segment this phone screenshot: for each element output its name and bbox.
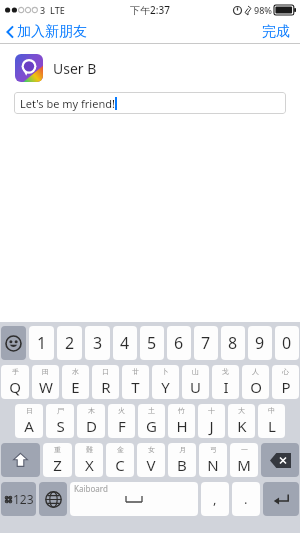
staticText: 2 — [65, 332, 75, 354]
button[interactable]: 山 — [182, 365, 209, 399]
button[interactable]: 尸 — [46, 404, 74, 438]
staticText: 金 — [117, 445, 124, 454]
button[interactable]: 木 — [77, 404, 105, 438]
staticText: 水 — [72, 367, 79, 376]
button[interactable]: 十 — [198, 404, 225, 438]
button[interactable]: 重 — [43, 443, 72, 477]
staticText: User B — [53, 59, 97, 78]
staticText: A — [24, 416, 34, 436]
staticText: E — [71, 377, 80, 397]
staticText: K — [237, 416, 247, 436]
staticText: 口 — [102, 367, 109, 376]
button[interactable]: 一 — [230, 443, 258, 477]
staticText: 戈 — [222, 367, 229, 376]
staticText: I — [223, 377, 229, 397]
staticText: 木 — [88, 406, 95, 415]
button[interactable]: 田 — [32, 365, 59, 399]
button[interactable]: 完成 — [252, 20, 300, 44]
button[interactable]: 手 — [1, 365, 29, 399]
staticText: G — [146, 416, 157, 436]
staticText: 0 — [282, 332, 292, 354]
button[interactable]: 女 — [137, 443, 165, 477]
button[interactable]: Return — [263, 482, 299, 516]
staticText: 3 — [93, 332, 103, 354]
staticText: 卜 — [162, 367, 169, 376]
staticText: 山 — [192, 367, 199, 376]
button[interactable]: 月 — [168, 443, 196, 477]
button[interactable]: 7 — [194, 326, 218, 360]
button[interactable]: 2 — [57, 326, 82, 360]
staticText: B — [177, 455, 187, 475]
button[interactable]: Emoji — [1, 326, 26, 360]
staticText: T — [131, 377, 140, 397]
staticText: 9 — [255, 332, 265, 354]
button[interactable]: 中 — [258, 404, 285, 438]
button[interactable]: 日 — [15, 404, 43, 438]
button[interactable]: Change keyboard — [39, 482, 67, 516]
staticText: 田 — [42, 367, 49, 376]
staticText: 月 — [179, 445, 186, 454]
button[interactable]: Numbers — [1, 482, 36, 516]
staticText: U — [190, 377, 201, 397]
staticText: P — [281, 377, 291, 397]
staticText: F — [118, 416, 126, 436]
button[interactable]: 火 — [108, 404, 135, 438]
button[interactable]: 9 — [248, 326, 272, 360]
button[interactable]: 8 — [221, 326, 245, 360]
staticText: 7 — [201, 332, 211, 354]
button[interactable]: , — [201, 482, 229, 516]
staticText: 廿 — [132, 367, 139, 376]
button[interactable]: 卜 — [152, 365, 179, 399]
button[interactable]: Space — [70, 482, 198, 516]
button[interactable]: 4 — [113, 326, 137, 360]
button[interactable]: 大 — [228, 404, 255, 438]
staticText: 完成 — [262, 23, 290, 41]
button[interactable]: 戈 — [212, 365, 239, 399]
button[interactable]: 3 — [85, 326, 110, 360]
staticText: Q — [9, 377, 21, 397]
staticText: D — [86, 416, 97, 436]
button[interactable]: 水 — [62, 365, 89, 399]
staticText: 日 — [26, 406, 33, 415]
staticText: 8 — [228, 332, 238, 354]
button[interactable]: 人 — [242, 365, 269, 399]
button[interactable]: 加入新朋友 — [0, 20, 95, 44]
staticText: 土 — [148, 406, 155, 415]
button[interactable]: User B — [0, 50, 300, 86]
staticText: Z — [53, 455, 62, 475]
staticText: 人 — [252, 367, 259, 376]
staticText: 重 — [54, 445, 61, 454]
staticText: Kaiboard — [74, 483, 108, 494]
button[interactable]: 5 — [140, 326, 164, 360]
button[interactable]: 1 — [29, 326, 54, 360]
button[interactable]: 金 — [106, 443, 134, 477]
button[interactable]: 6 — [167, 326, 191, 360]
staticText: 6 — [174, 332, 184, 354]
staticText: . — [244, 490, 248, 508]
staticText: 心 — [282, 367, 289, 376]
button[interactable]: 竹 — [168, 404, 195, 438]
button[interactable]: 口 — [92, 365, 119, 399]
staticText: N — [207, 455, 219, 475]
button[interactable]: Shift — [1, 443, 40, 477]
button[interactable]: 弓 — [199, 443, 227, 477]
staticText: 中 — [268, 406, 275, 415]
staticText: 98% — [254, 4, 272, 16]
staticText: 下午2:37 — [130, 3, 170, 17]
staticText: H — [176, 416, 188, 436]
button[interactable]: Let's be my friend! — [14, 92, 286, 114]
staticText: J — [209, 416, 214, 436]
staticText: L — [268, 416, 276, 436]
staticText: W — [39, 377, 53, 397]
staticText: 火 — [118, 406, 125, 415]
button[interactable]: 心 — [272, 365, 299, 399]
button[interactable]: 難 — [75, 443, 103, 477]
staticText: 大 — [238, 406, 245, 415]
button[interactable]: Delete — [261, 443, 299, 477]
button[interactable]: 廿 — [122, 365, 149, 399]
staticText: 123 — [13, 491, 34, 507]
button[interactable]: 土 — [138, 404, 165, 438]
staticText: 1 — [37, 332, 47, 354]
button[interactable]: . — [232, 482, 260, 516]
button[interactable]: 0 — [275, 326, 299, 360]
